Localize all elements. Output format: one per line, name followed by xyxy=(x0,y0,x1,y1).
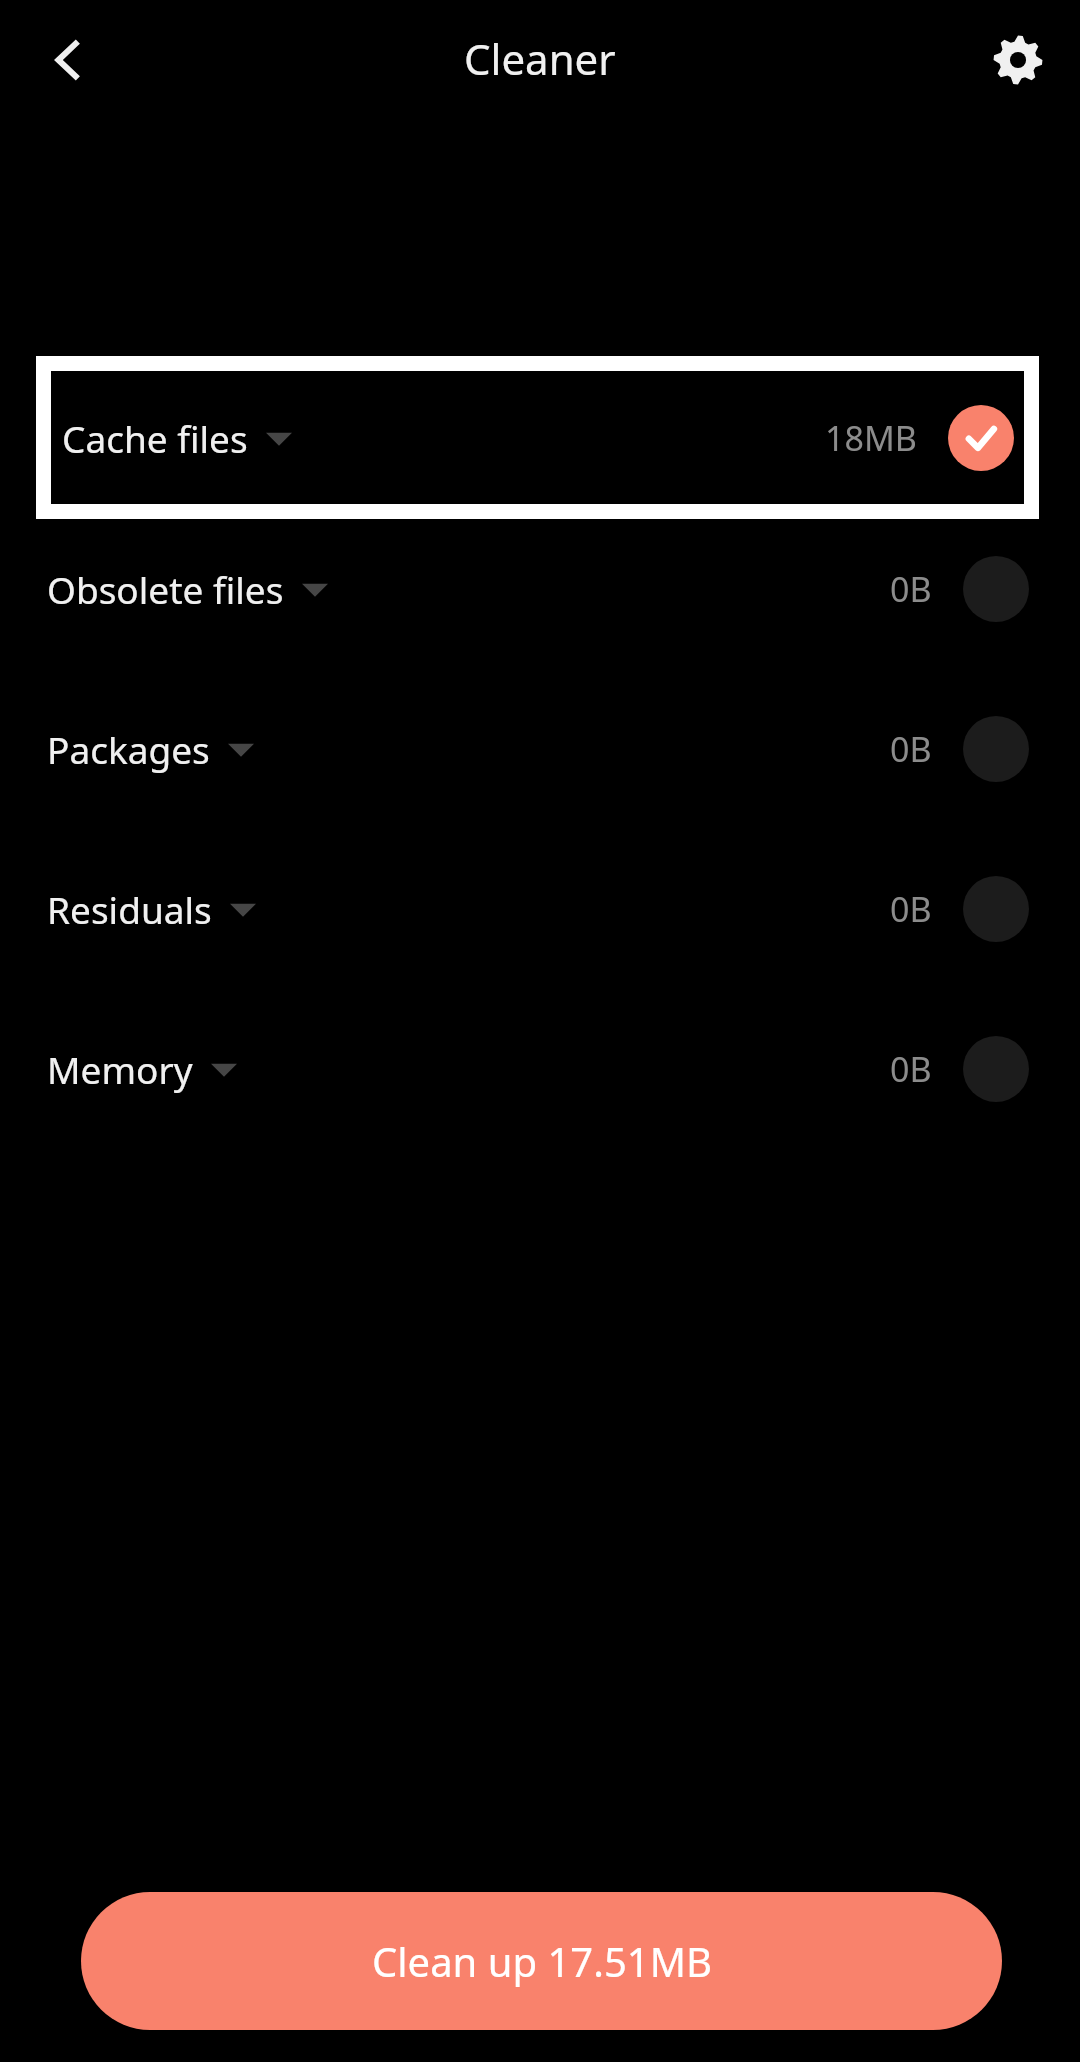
staticText: Memory xyxy=(47,1044,193,1094)
staticText: Packages xyxy=(47,724,210,774)
staticText: Obsolete files xyxy=(47,564,284,614)
staticText: 0B xyxy=(890,886,932,932)
staticText: 0B xyxy=(890,566,932,612)
button[interactable]: Packages xyxy=(36,669,1039,829)
button[interactable]: Residuals xyxy=(36,829,1039,989)
staticText: 18MB xyxy=(825,415,917,461)
button[interactable]: Cache files xyxy=(51,371,1024,504)
button[interactable]: Settings xyxy=(968,10,1068,110)
staticText: Cache files xyxy=(62,413,248,463)
button[interactable]: Clean up 17.51MB xyxy=(81,1892,1002,2030)
staticText: Residuals xyxy=(47,884,212,934)
button[interactable]: Back xyxy=(18,10,118,110)
staticText: Cleaner xyxy=(464,30,616,87)
staticText: 0B xyxy=(890,1046,932,1092)
staticText: 0B xyxy=(890,726,932,772)
button[interactable]: Memory xyxy=(36,989,1039,1149)
button[interactable]: Obsolete files xyxy=(36,509,1039,669)
staticText: Clean up 17.51MB xyxy=(372,1934,712,1988)
